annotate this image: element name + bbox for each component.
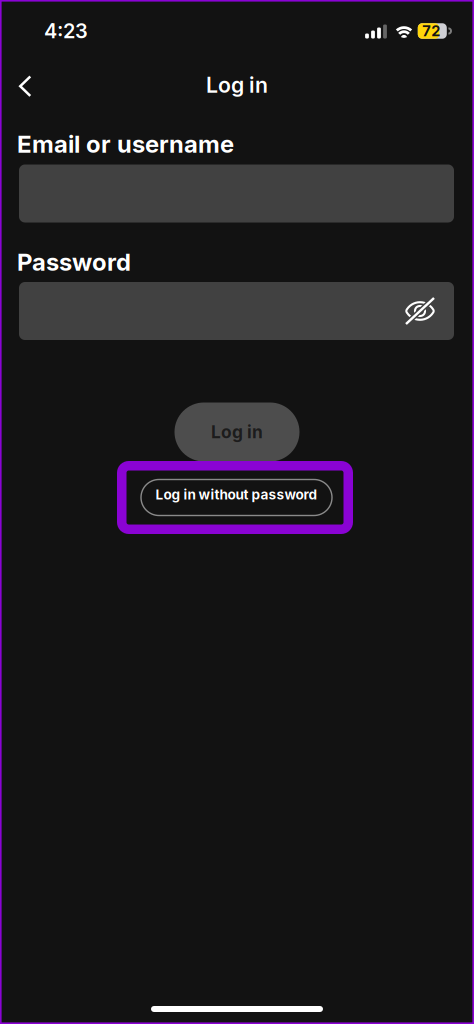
staticText: Log in — [211, 421, 263, 442]
staticText: 4:23 — [44, 19, 88, 43]
button[interactable]: Log in — [174, 402, 299, 461]
staticText: Password — [17, 247, 131, 276]
button[interactable]: Back — [2, 63, 48, 109]
button[interactable]: Log in without password — [141, 479, 332, 515]
staticText: Log in without password — [155, 486, 317, 503]
staticText: Log in — [206, 72, 268, 98]
staticText: Email or username — [17, 129, 234, 158]
staticText: 72 — [422, 22, 440, 40]
button[interactable]: Show password — [397, 288, 443, 334]
